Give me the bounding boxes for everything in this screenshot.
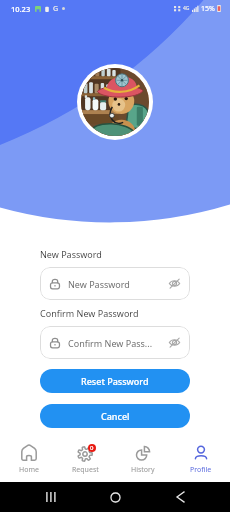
staticText: New Password xyxy=(40,248,102,260)
button[interactable]: Reset Password xyxy=(40,369,190,393)
staticText: Confirm New Pass... xyxy=(68,337,153,349)
button[interactable]: New Password xyxy=(40,267,190,300)
button[interactable]: Cancel xyxy=(40,404,190,428)
button[interactable]: Back xyxy=(162,482,198,512)
staticText: Home xyxy=(19,465,39,475)
button[interactable]: Confirm New Pass... xyxy=(40,326,190,359)
button[interactable]: Home xyxy=(0,443,57,475)
staticText: Reset Password xyxy=(81,375,149,387)
staticText: 10.23 xyxy=(11,4,31,14)
button[interactable]: History xyxy=(114,443,172,475)
button[interactable]: Home xyxy=(97,482,133,512)
staticText: History xyxy=(131,465,155,475)
staticText: Profile xyxy=(190,465,212,475)
staticText: Confirm New Password xyxy=(40,307,139,319)
button[interactable]: Recent apps xyxy=(33,482,69,512)
staticText: 4G xyxy=(183,5,190,12)
staticText: 0 xyxy=(90,444,94,452)
button[interactable]: Profile xyxy=(172,443,230,475)
button[interactable]: 0 xyxy=(57,443,114,475)
staticText: 15% xyxy=(201,4,215,14)
staticText: New Password xyxy=(68,278,130,290)
staticText: Request xyxy=(72,465,99,475)
staticText: Cancel xyxy=(101,410,130,422)
staticText: G xyxy=(53,4,59,14)
